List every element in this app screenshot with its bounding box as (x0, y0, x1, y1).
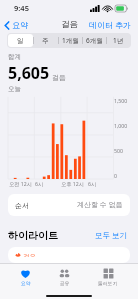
staticText: 합계 (8, 53, 21, 61)
staticText: 500 (114, 147, 123, 154)
staticText: 둘러보기 (98, 280, 118, 286)
staticText: 1,500 (114, 97, 128, 104)
staticText: 오전 12시 (9, 180, 32, 187)
staticText: 걸음 (23, 253, 36, 257)
staticText: 걸음 (52, 73, 66, 82)
staticText: 오늘 (8, 85, 21, 93)
button[interactable]: 1개월 (58, 34, 82, 47)
button[interactable]: 순서 (8, 194, 130, 216)
staticText: 5,605 (8, 62, 50, 84)
staticText: 6시 (88, 180, 97, 187)
button[interactable]: 일 (8, 34, 33, 47)
staticText: 오후 12시 (61, 180, 84, 187)
button[interactable]: 공유 (51, 267, 78, 287)
staticText: 요약 (21, 280, 31, 286)
button[interactable]: 걸음 (8, 247, 130, 263)
button[interactable]: 둘러보기 (90, 267, 126, 287)
button[interactable]: 주 (33, 34, 58, 47)
button[interactable]: 요약 (0, 18, 32, 32)
staticText: 하이라이트 (8, 229, 58, 242)
button[interactable]: 6개월 (82, 34, 106, 47)
staticText: 1년 (113, 36, 124, 45)
staticText: 계산할 수 없음 (77, 200, 123, 210)
staticText: 0 (114, 172, 117, 179)
button[interactable]: 데이터 추가 (83, 17, 138, 32)
staticText: 6개월 (86, 36, 103, 45)
staticText: 9:45 (14, 3, 29, 13)
staticText: 주 (42, 37, 49, 45)
staticText: 1개월 (62, 36, 79, 45)
button[interactable]: 1년 (106, 34, 130, 47)
staticText: 6시 (35, 180, 44, 187)
staticText: 일 (17, 37, 24, 45)
staticText: 공유 (60, 280, 70, 286)
staticText: 순서 (15, 201, 29, 210)
button[interactable]: 요약 (12, 267, 39, 287)
staticText: 요약 (12, 20, 28, 30)
staticText: 걸음 (61, 19, 78, 30)
staticText: 1,000 (114, 122, 128, 129)
button[interactable]: 모두 보기 (92, 228, 130, 242)
